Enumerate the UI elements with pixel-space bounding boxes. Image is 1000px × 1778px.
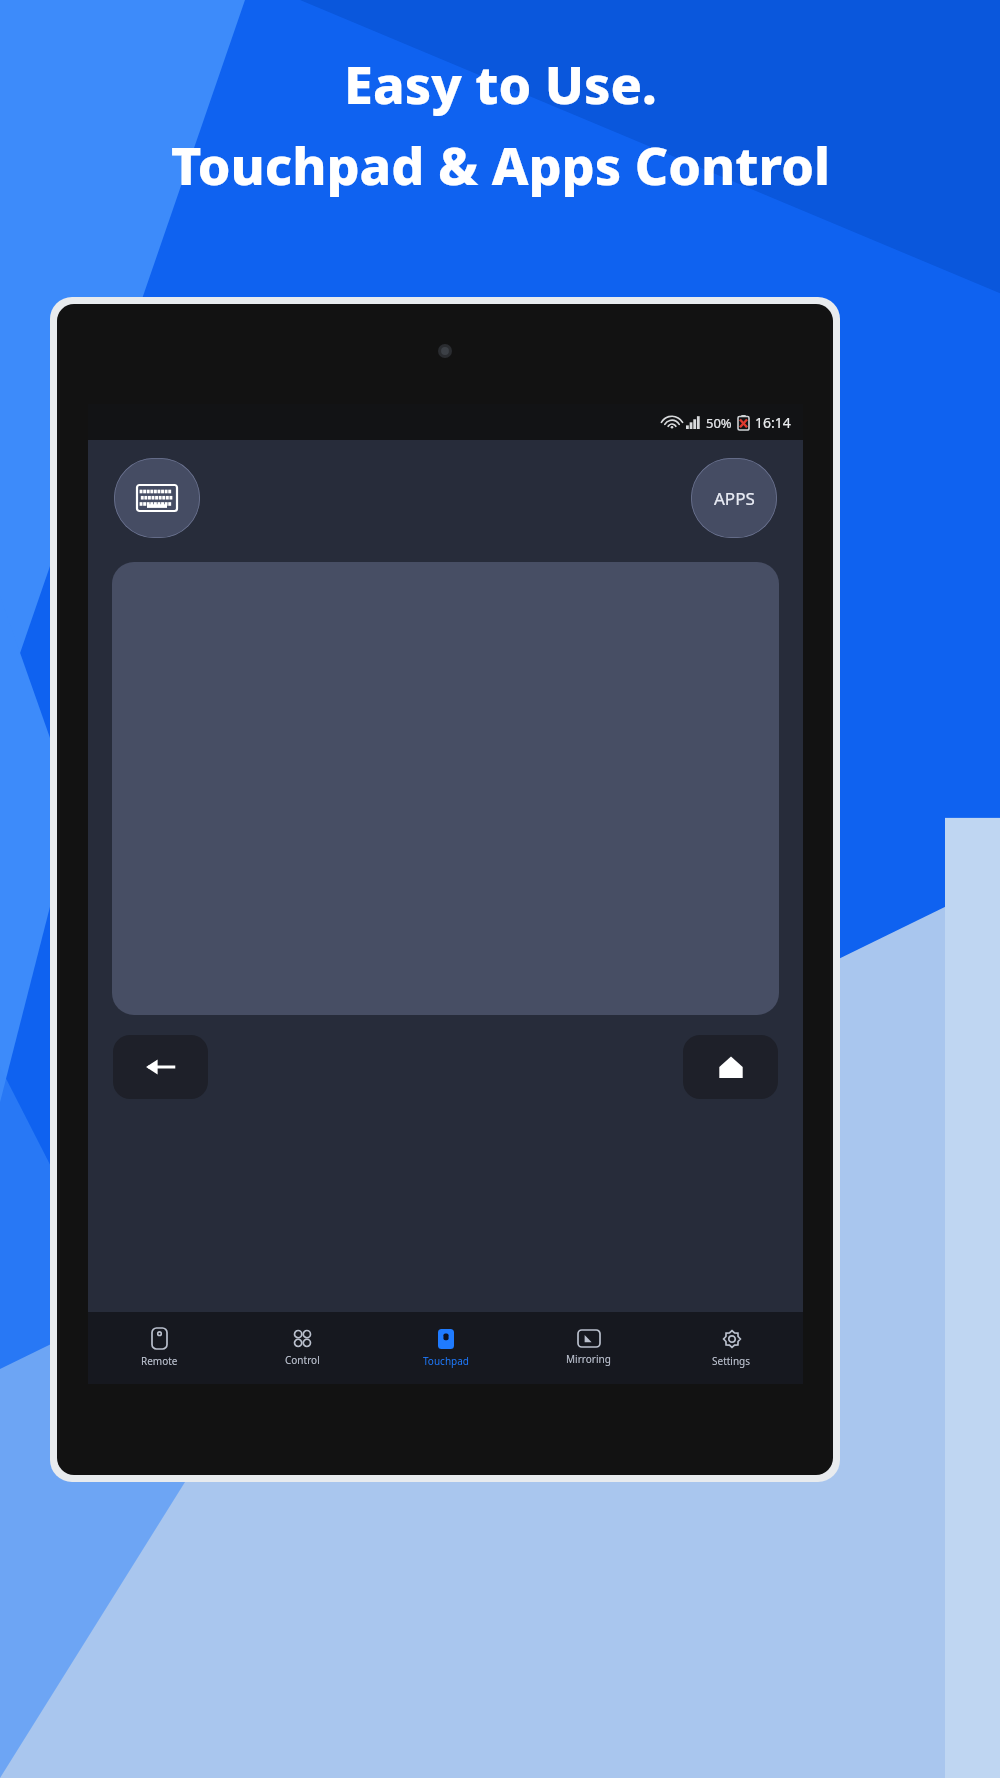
staticText: APPS: [714, 487, 755, 510]
staticText: Settings: [712, 1354, 751, 1368]
staticText: 16:14: [755, 413, 791, 432]
staticText: Touchpad: [423, 1354, 469, 1368]
staticText: Easy to Use.: [344, 48, 657, 119]
button[interactable]: Control: [231, 1312, 374, 1384]
button[interactable]: Touchpad: [374, 1312, 517, 1384]
staticText: 50%: [706, 414, 732, 432]
button[interactable]: Home: [683, 1035, 778, 1099]
staticText: Remote: [141, 1354, 178, 1368]
button[interactable]: Keyboard: [114, 458, 200, 538]
staticText: Control: [285, 1353, 320, 1367]
button[interactable]: Apps: [691, 458, 777, 538]
staticText: Touchpad & Apps Control: [171, 129, 830, 200]
button[interactable]: Mirroring: [517, 1312, 660, 1384]
button[interactable]: Settings: [660, 1312, 803, 1384]
button[interactable]: Remote: [88, 1312, 231, 1384]
button[interactable]: Back: [113, 1035, 208, 1099]
staticText: Mirroring: [566, 1352, 611, 1366]
